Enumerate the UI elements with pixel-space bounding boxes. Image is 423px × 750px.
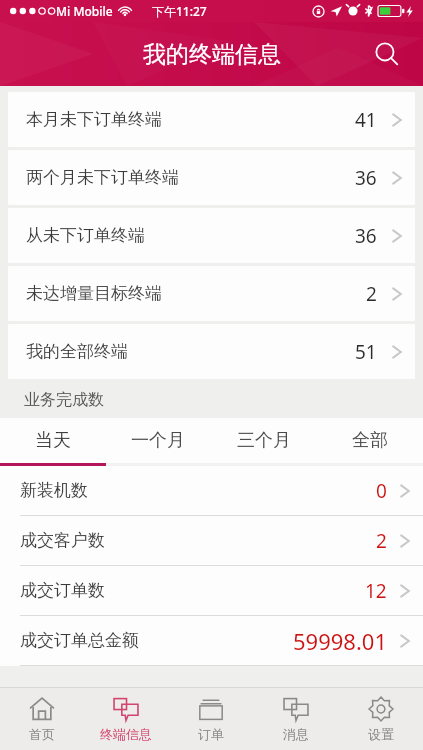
staticText: 一个月 <box>131 429 185 452</box>
button[interactable]: 全部 <box>317 418 423 463</box>
staticText: 36 <box>355 165 377 191</box>
staticText: 三个月 <box>237 429 291 452</box>
staticText: 我的全部终端 <box>26 341 128 362</box>
staticText: 12 <box>365 578 387 604</box>
staticText: Mi Mobile <box>56 3 113 19</box>
staticText: 2 <box>376 528 387 554</box>
button[interactable]: 成交订单数 <box>0 566 423 615</box>
button[interactable]: 订单 <box>168 688 253 750</box>
button[interactable]: Search <box>365 32 409 76</box>
button[interactable]: 未达增量目标终端 <box>8 266 415 321</box>
staticText: 业务完成数 <box>24 390 104 410</box>
button[interactable]: 首页 <box>0 688 84 750</box>
staticText: 36 <box>355 223 377 249</box>
button[interactable]: 成交客户数 <box>0 516 423 565</box>
button[interactable]: 我的全部终端 <box>8 324 415 379</box>
button[interactable]: 从未下订单终端 <box>8 208 415 263</box>
staticText: 终端信息 <box>100 726 152 742</box>
staticText: 新装机数 <box>20 480 88 501</box>
button[interactable]: 成交订单总金额 <box>0 616 423 665</box>
staticText: 成交订单数 <box>20 580 105 601</box>
staticText: 当天 <box>35 429 71 452</box>
button[interactable]: 一个月 <box>105 418 211 463</box>
button[interactable]: 本月未下订单终端 <box>8 92 415 147</box>
staticText: 0 <box>376 478 387 504</box>
button[interactable]: 设置 <box>338 688 423 750</box>
button[interactable]: 新装机数 <box>0 466 423 515</box>
staticText: 从未下订单终端 <box>26 225 145 246</box>
staticText: 我的终端信息 <box>143 40 281 69</box>
button[interactable]: 当天 <box>0 418 105 463</box>
staticText: 消息 <box>283 726 309 742</box>
staticText: 订单 <box>198 726 224 742</box>
button[interactable]: 消息 <box>253 688 338 750</box>
staticText: 下午11:27 <box>152 3 207 19</box>
staticText: 59998.01 <box>293 626 387 656</box>
staticText: 设置 <box>368 726 394 742</box>
staticText: 2 <box>366 281 377 307</box>
staticText: 41 <box>355 107 377 133</box>
staticText: 未达增量目标终端 <box>26 283 162 304</box>
staticText: 本月未下订单终端 <box>26 109 162 130</box>
staticText: 成交客户数 <box>20 530 105 551</box>
button[interactable]: 三个月 <box>211 418 317 463</box>
button[interactable]: 两个月未下订单终端 <box>8 150 415 205</box>
button[interactable]: 终端信息 <box>84 688 168 750</box>
staticText: 首页 <box>29 726 55 742</box>
staticText: 成交订单总金额 <box>20 630 139 651</box>
staticText: 51 <box>355 339 377 365</box>
staticText: 全部 <box>352 429 388 452</box>
staticText: 两个月未下订单终端 <box>26 167 179 188</box>
